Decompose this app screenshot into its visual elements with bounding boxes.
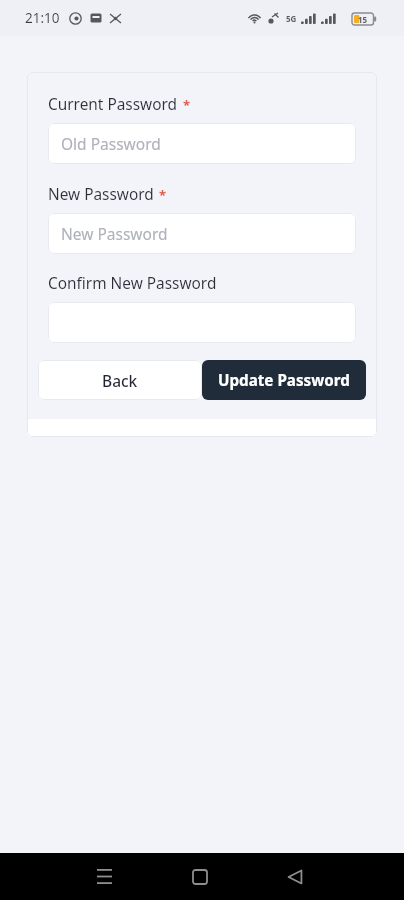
- staticText: Update Password: [218, 370, 350, 391]
- button[interactable]: Home: [182, 859, 217, 894]
- button[interactable]: [48, 302, 356, 343]
- staticText: Current Password: [48, 94, 178, 115]
- staticText: Back: [102, 370, 138, 391]
- staticText: Confirm New Password: [48, 273, 217, 294]
- button[interactable]: Old Password: [48, 123, 356, 164]
- staticText: 21:10: [25, 9, 60, 27]
- staticText: *: [183, 96, 191, 114]
- button[interactable]: New Password: [48, 213, 356, 254]
- button[interactable]: Back: [38, 360, 202, 400]
- staticText: Old Password: [61, 133, 161, 154]
- button[interactable]: Recent apps: [87, 859, 122, 894]
- staticText: New Password: [61, 223, 168, 244]
- button[interactable]: Update Password: [202, 360, 366, 400]
- button[interactable]: Back: [277, 859, 312, 894]
- staticText: 15: [358, 14, 368, 25]
- staticText: *: [159, 186, 167, 204]
- staticText: New Password: [48, 184, 154, 205]
- staticText: 5G: [286, 13, 297, 24]
